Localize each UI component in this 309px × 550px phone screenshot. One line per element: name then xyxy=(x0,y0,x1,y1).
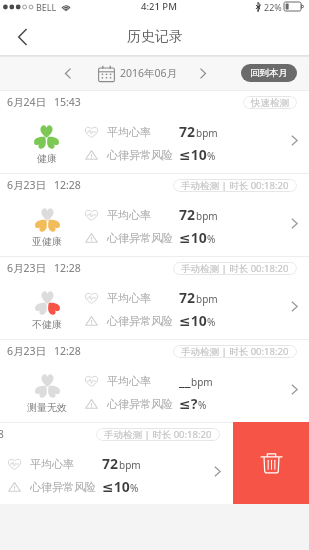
staticText: % xyxy=(198,398,207,412)
staticText: ≤? xyxy=(179,394,198,413)
staticText: 6月23日 xyxy=(7,344,47,358)
staticText: 心律异常风险 xyxy=(30,480,96,494)
staticText: __ xyxy=(179,371,191,390)
staticText: % xyxy=(207,315,216,329)
staticText: 测量无效 xyxy=(27,401,67,414)
staticText: 心律异常风险 xyxy=(107,231,173,245)
staticText: bpm xyxy=(196,126,218,140)
staticText: 4:21 PM xyxy=(141,0,177,13)
button[interactable]: 6月23日 xyxy=(0,339,309,422)
button[interactable]: Previous month xyxy=(60,56,76,90)
staticText: 6月23日 xyxy=(7,178,47,192)
staticText: bpm xyxy=(119,458,141,472)
button[interactable]: 6月23日 xyxy=(0,256,309,339)
staticText: 平均心率 xyxy=(107,374,151,388)
button[interactable]: 6月24日 xyxy=(0,90,309,173)
button[interactable]: Delete xyxy=(233,422,309,504)
staticText: 2016年06月 xyxy=(120,66,178,80)
staticText: 快速检测 xyxy=(251,97,289,109)
staticText: 手动检测 | 时长 00:18:20 xyxy=(181,262,289,275)
staticText: % xyxy=(130,481,139,495)
staticText: ≤10 xyxy=(102,477,130,496)
staticText: ≤10 xyxy=(179,311,207,330)
staticText: 回到本月 xyxy=(250,67,288,79)
staticText: 心律异常风险 xyxy=(107,148,173,162)
staticText: 历史记录 xyxy=(127,28,183,46)
staticText: 健康 xyxy=(37,152,57,165)
button[interactable]: 6月23日 xyxy=(0,173,309,256)
staticText: 心律异常风险 xyxy=(107,397,173,411)
staticText: 72 xyxy=(179,288,196,307)
staticText: % xyxy=(207,232,216,246)
staticText: 12:28 xyxy=(0,427,4,441)
button[interactable]: Back xyxy=(0,18,44,56)
staticText: 心律异常风险 xyxy=(107,314,173,328)
staticText: 不健康 xyxy=(32,318,62,331)
staticText: 72 xyxy=(179,122,196,141)
staticText: 平均心率 xyxy=(30,457,74,471)
staticText: 72 xyxy=(179,205,196,224)
staticText: bpm xyxy=(191,375,213,389)
staticText: bpm xyxy=(196,292,218,306)
staticText: 平均心率 xyxy=(107,291,151,305)
staticText: 亚健康 xyxy=(32,235,62,248)
staticText: ≤10 xyxy=(179,145,207,164)
staticText: % xyxy=(207,149,216,163)
staticText: 12:28 xyxy=(54,344,81,358)
staticText: 6月23日 xyxy=(7,261,47,275)
staticText: 12:28 xyxy=(54,178,81,192)
staticText: 22% xyxy=(264,1,282,13)
button[interactable]: 回到本月 xyxy=(241,64,297,82)
staticText: ≤10 xyxy=(179,228,207,247)
staticText: 平均心率 xyxy=(107,125,151,139)
staticText: 平均心率 xyxy=(107,208,151,222)
staticText: 72 xyxy=(102,454,119,473)
staticText: BELL xyxy=(36,1,57,13)
staticText: 手动检测 | 时长 00:18:20 xyxy=(181,345,289,358)
staticText: 手动检测 | 时长 00:18:20 xyxy=(104,428,212,441)
staticText: 手动检测 | 时长 00:18:20 xyxy=(181,179,289,192)
button[interactable]: Next month xyxy=(195,56,211,90)
staticText: 6月24日 xyxy=(7,95,47,109)
staticText: 15:43 xyxy=(54,95,81,109)
staticText: bpm xyxy=(196,209,218,223)
staticText: 12:28 xyxy=(54,261,81,275)
